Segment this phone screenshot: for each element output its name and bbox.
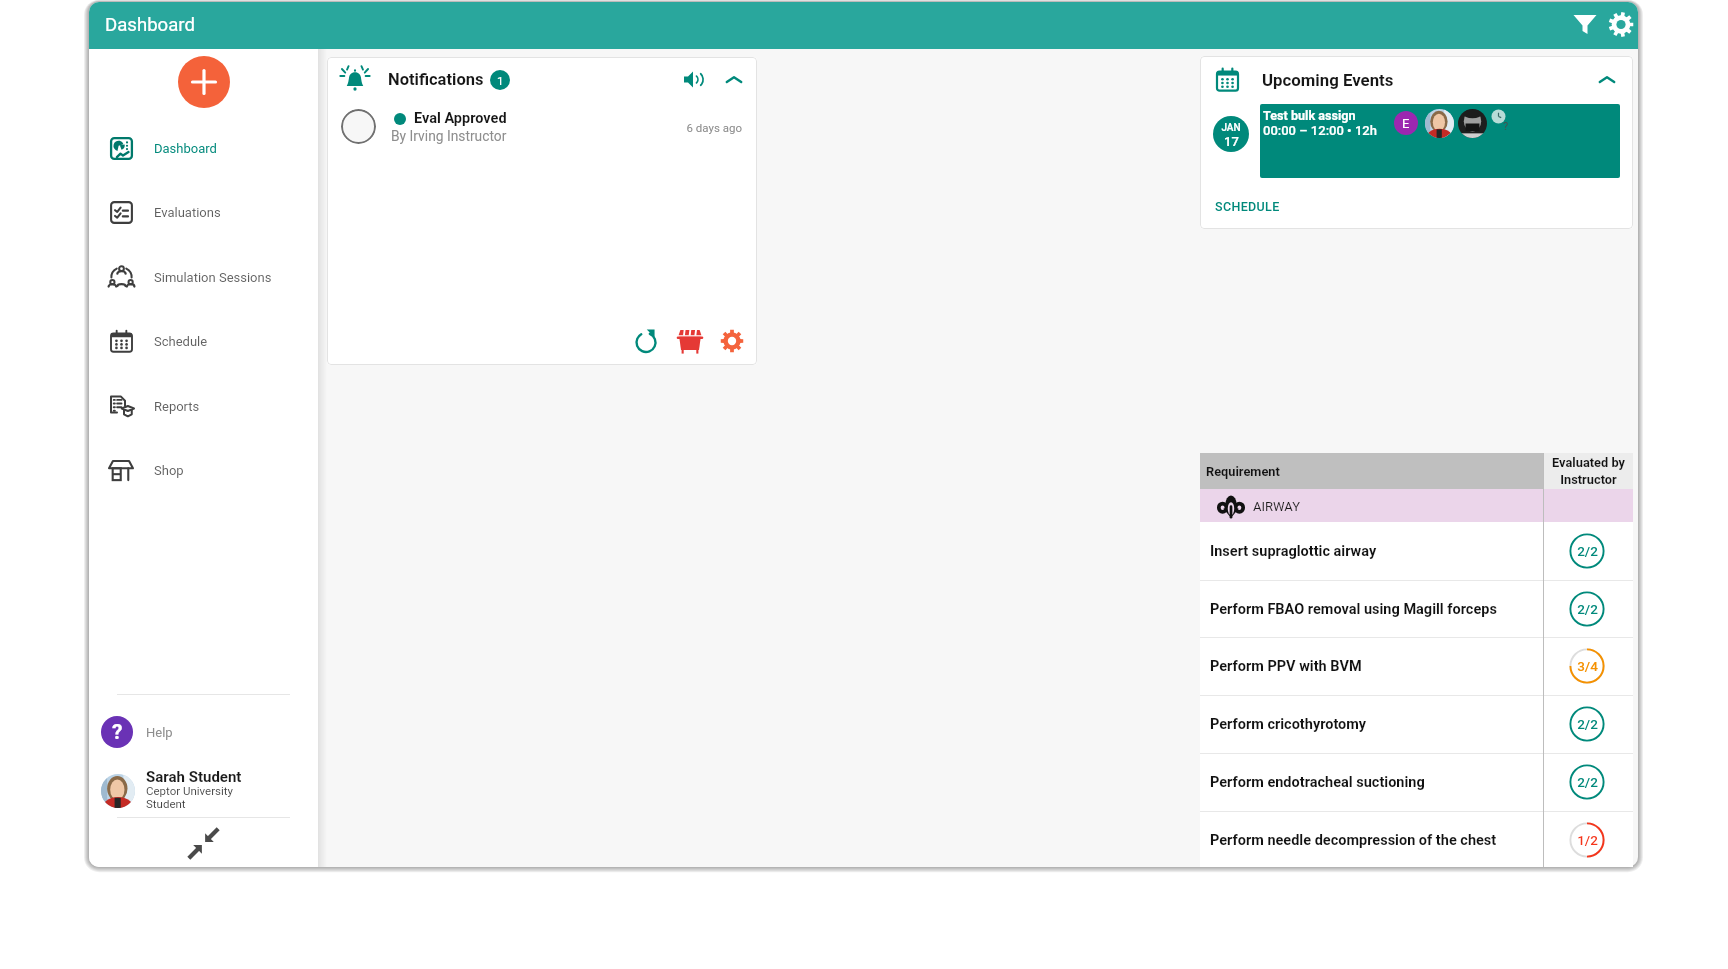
button[interactable]: Shop	[89, 444, 318, 496]
button[interactable]: Perform FBAO removal using Magill forcep…	[1200, 580, 1633, 638]
staticText: Perform endotracheal suctioning	[1210, 774, 1425, 791]
staticText: Test bulk assign	[1263, 108, 1356, 123]
staticText: 3/4	[1577, 658, 1598, 674]
staticText: JAN	[1221, 122, 1241, 134]
button[interactable]: Refresh	[631, 327, 661, 357]
staticText: Evaluated by	[1552, 455, 1625, 470]
button[interactable]: Settings	[1605, 8, 1637, 40]
button[interactable]: Simulation Sessions	[89, 251, 318, 303]
staticText: By Irving Instructor	[391, 128, 507, 144]
staticText: Perform FBAO removal using Magill forcep…	[1210, 601, 1497, 618]
staticText: 00:00 – 12:00 • 12h	[1263, 123, 1377, 138]
staticText: 2/2	[1577, 716, 1598, 732]
staticText: E	[1402, 116, 1410, 131]
staticText: Perform cricothyrotomy	[1210, 716, 1367, 733]
staticText: 6 days ago	[686, 121, 742, 134]
button[interactable]: Sarah Student	[89, 764, 318, 818]
staticText: 17	[1224, 134, 1239, 149]
button[interactable]: Collapse menu	[189, 829, 218, 858]
button[interactable]: Reports	[89, 380, 318, 432]
staticText: SCHEDULE	[1215, 199, 1280, 214]
button[interactable]: Create new	[178, 56, 230, 108]
button[interactable]: Perform cricothyrotomy	[1200, 695, 1633, 753]
button[interactable]: Test bulk assign	[1260, 104, 1620, 178]
staticText: Upcoming Events	[1262, 70, 1394, 90]
staticText: AIRWAY	[1253, 499, 1300, 514]
staticText: 2/2	[1577, 601, 1598, 617]
staticText: ?	[112, 720, 123, 745]
staticText: Perform needle decompression of the ches…	[1210, 832, 1497, 849]
staticText: Eval Approved	[414, 110, 507, 127]
staticText: Ceptor University	[146, 784, 234, 797]
staticText: Requirement	[1206, 464, 1280, 479]
staticText: Notifications	[388, 70, 484, 89]
button[interactable]: Perform endotracheal suctioning	[1200, 753, 1633, 811]
staticText: Perform PPV with BVM	[1210, 658, 1362, 675]
button[interactable]: Collapse	[719, 65, 749, 95]
button[interactable]: Perform needle decompression of the ches…	[1200, 811, 1633, 869]
button[interactable]: Delete	[675, 326, 705, 356]
staticText: Evaluations	[154, 205, 221, 220]
staticText: Simulation Sessions	[154, 270, 272, 285]
staticText: Dashboard	[154, 141, 217, 156]
staticText: 2/2	[1577, 543, 1598, 559]
staticText: Schedule	[154, 334, 208, 349]
button[interactable]: Evaluations	[89, 186, 318, 238]
staticText: Instructor	[1560, 472, 1617, 487]
button[interactable]: Perform PPV with BVM	[1200, 637, 1633, 695]
button[interactable]: ?	[89, 710, 318, 754]
staticText: Help	[146, 725, 173, 740]
staticText: Shop	[154, 463, 184, 478]
button[interactable]: Insert supraglottic airway	[1200, 522, 1633, 580]
staticText: Student	[146, 797, 186, 810]
staticText: 2/2	[1577, 774, 1598, 790]
button[interactable]: Sound	[679, 65, 709, 95]
button[interactable]: Eval Approved	[328, 100, 756, 154]
staticText: Insert supraglottic airway	[1210, 543, 1377, 560]
button[interactable]: SCHEDULE	[1215, 194, 1295, 218]
button[interactable]: Filter	[1569, 8, 1601, 40]
staticText: Reports	[154, 399, 200, 414]
staticText: 1/2	[1577, 832, 1598, 848]
button[interactable]: Collapse	[1592, 65, 1622, 95]
staticText: Sarah Student	[146, 768, 242, 786]
button[interactable]: Schedule	[89, 315, 318, 367]
staticText: 1	[497, 74, 504, 87]
button[interactable]: Dashboard	[89, 122, 318, 174]
staticText: Dashboard	[105, 14, 195, 36]
button[interactable]: Notification settings	[717, 326, 747, 356]
staticText: ?	[1503, 120, 1509, 133]
